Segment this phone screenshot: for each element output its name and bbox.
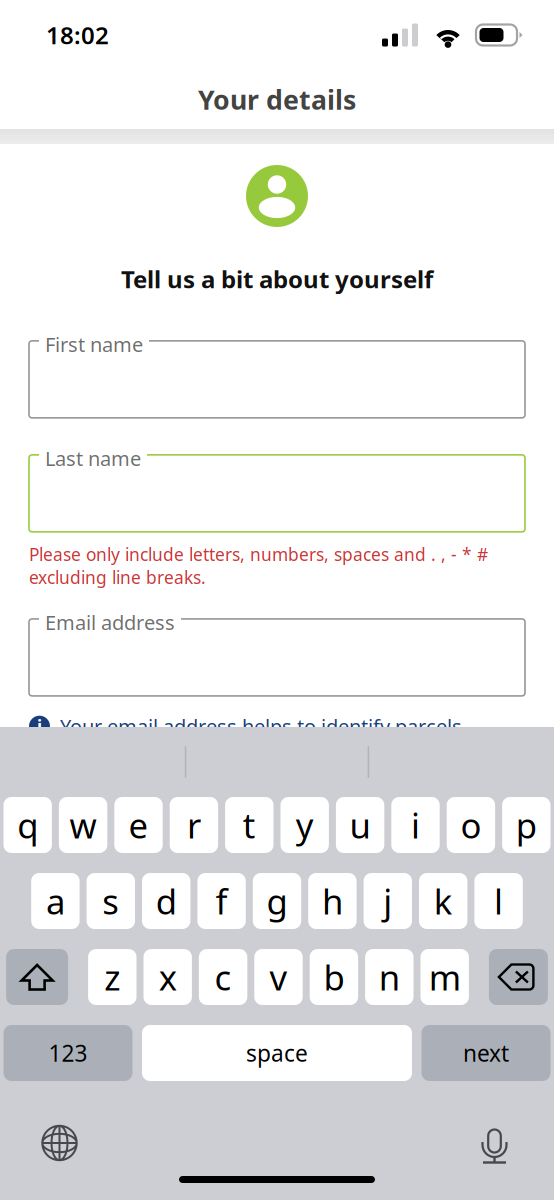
button[interactable]: Dictate: [472, 1121, 516, 1165]
button[interactable]: next: [421, 1025, 550, 1081]
button[interactable]: Delete: [489, 949, 548, 1005]
button[interactable]: e: [114, 797, 163, 853]
button[interactable]: g: [253, 873, 301, 929]
staticText: t: [243, 802, 256, 848]
staticText: 123: [48, 1038, 87, 1068]
staticText: e: [128, 802, 148, 848]
button[interactable]: v: [254, 949, 303, 1005]
staticText: Last name: [45, 445, 141, 471]
staticText: q: [17, 802, 38, 848]
button[interactable]: c: [199, 949, 247, 1005]
button[interactable]: p: [502, 797, 550, 853]
staticText: l: [494, 878, 503, 924]
staticText: d: [156, 878, 177, 924]
button[interactable]: 123: [3, 1025, 132, 1081]
staticText: b: [323, 954, 344, 1000]
staticText: f: [216, 878, 228, 924]
staticText: c: [215, 954, 232, 1000]
staticText: next: [463, 1038, 509, 1068]
button[interactable]: z: [88, 949, 136, 1005]
button[interactable]: q: [3, 797, 52, 853]
button[interactable]: First name: [29, 341, 525, 418]
button[interactable]: n: [365, 949, 413, 1005]
button[interactable]: Last name: [29, 455, 525, 532]
button[interactable]: k: [419, 873, 467, 929]
button[interactable]: j: [364, 873, 412, 929]
staticText: x: [159, 954, 177, 1000]
staticText: o: [460, 802, 481, 848]
staticText: p: [516, 802, 537, 848]
button[interactable]: x: [143, 949, 192, 1005]
button[interactable]: y: [280, 797, 329, 853]
staticText: v: [269, 954, 287, 1000]
staticText: m: [429, 954, 461, 1000]
staticText: u: [350, 802, 371, 848]
button[interactable]: Email address: [29, 619, 525, 696]
button[interactable]: s: [87, 873, 135, 929]
staticText: Please only include letters, numbers, sp…: [29, 543, 488, 589]
button[interactable]: d: [142, 873, 190, 929]
staticText: n: [379, 954, 400, 1000]
button[interactable]: Next keyboard: [37, 1121, 81, 1165]
button[interactable]: b: [310, 949, 358, 1005]
button[interactable]: m: [420, 949, 469, 1005]
staticText: space: [246, 1038, 308, 1068]
staticText: First name: [45, 331, 143, 357]
staticText: Tell us a bit about yourself: [121, 263, 433, 295]
button[interactable]: space: [142, 1025, 412, 1081]
staticText: j: [383, 878, 392, 924]
staticText: i: [411, 802, 420, 848]
button[interactable]: u: [336, 797, 384, 853]
staticText: w: [70, 802, 97, 848]
button[interactable]: a: [31, 873, 80, 929]
button[interactable]: l: [474, 873, 523, 929]
button[interactable]: i: [391, 797, 440, 853]
staticText: r: [187, 802, 201, 848]
button[interactable]: h: [308, 873, 357, 929]
button[interactable]: t: [225, 797, 273, 853]
button[interactable]: f: [197, 873, 246, 929]
staticText: k: [434, 878, 453, 924]
staticText: i: [37, 715, 42, 738]
button[interactable]: w: [59, 797, 107, 853]
staticText: Your details: [198, 82, 356, 117]
button[interactable]: r: [170, 797, 218, 853]
staticText: y: [296, 802, 314, 848]
staticText: g: [266, 878, 287, 924]
staticText: z: [104, 954, 120, 1000]
button[interactable]: Shift: [6, 949, 68, 1005]
staticText: a: [46, 878, 65, 924]
staticText: 18:02: [46, 19, 109, 51]
staticText: Your email address helps to identify par…: [60, 713, 462, 739]
staticText: s: [102, 878, 119, 924]
staticText: Email address: [45, 609, 175, 635]
staticText: h: [322, 878, 343, 924]
button[interactable]: o: [447, 797, 495, 853]
